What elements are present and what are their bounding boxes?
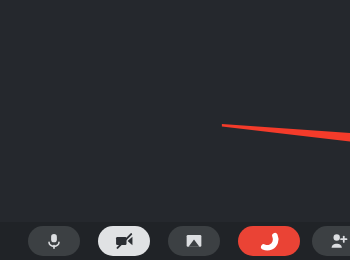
- button[interactable]: Present screen: [168, 226, 220, 256]
- button[interactable]: Leave call: [238, 226, 300, 256]
- button[interactable]: Add person: [312, 226, 350, 256]
- button[interactable]: Turn camera on: [98, 226, 150, 256]
- button[interactable]: Mute microphone: [28, 226, 80, 256]
